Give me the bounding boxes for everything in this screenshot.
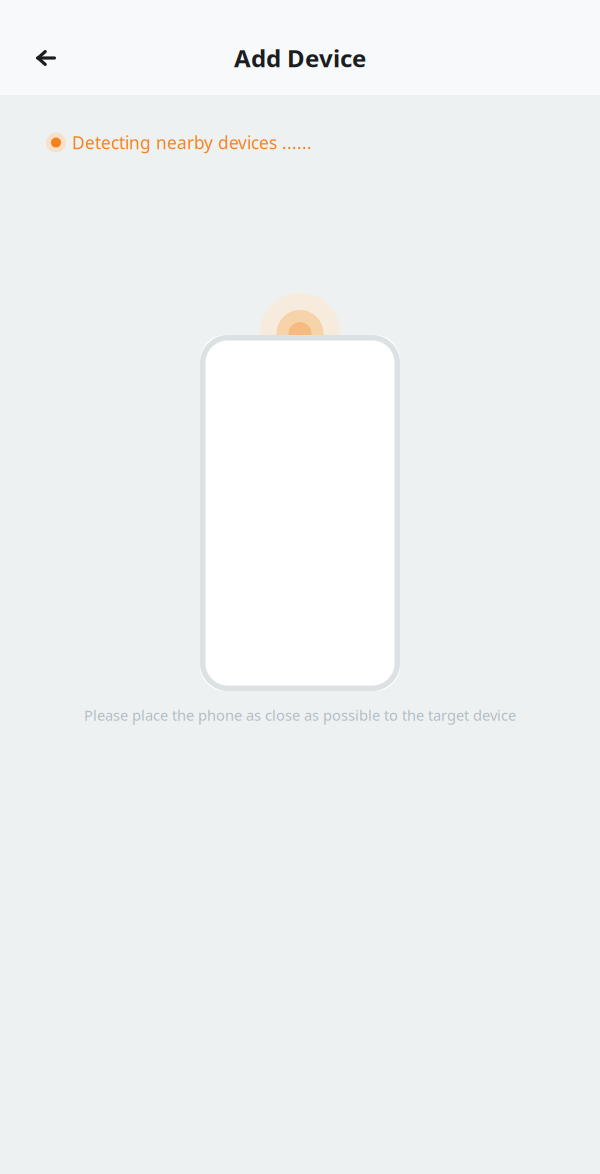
- staticText: Add Device: [234, 42, 366, 74]
- staticText: Detecting nearby devices ......: [72, 131, 312, 154]
- staticText: Please place the phone as close as possi…: [84, 705, 516, 725]
- button[interactable]: Back: [18, 36, 74, 80]
